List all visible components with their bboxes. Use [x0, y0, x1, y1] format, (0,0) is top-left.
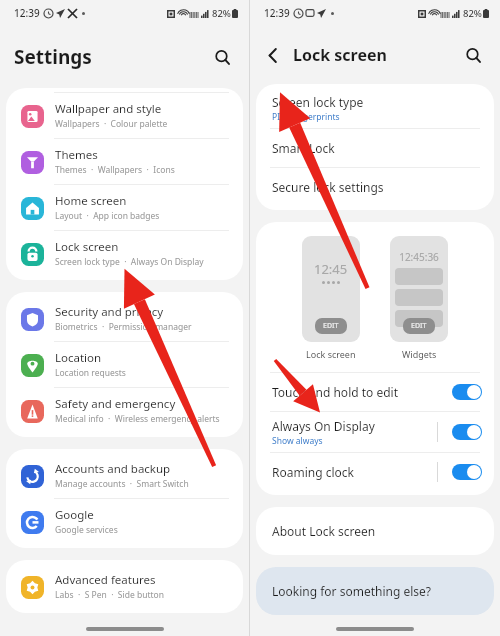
button[interactable]: Themes — [6, 138, 243, 184]
staticText: 82% — [463, 7, 482, 20]
button[interactable]: Security and privacy — [6, 296, 243, 341]
staticText: Advanced features — [55, 572, 156, 588]
staticText: 12:45:36 — [395, 250, 443, 264]
button[interactable]: EDIT — [323, 321, 339, 331]
staticText: Manage accounts · Smart Switch — [55, 478, 189, 490]
button[interactable]: Always On Display — [256, 411, 494, 452]
button[interactable]: Accounts and backup — [6, 453, 243, 498]
staticText: Biometrics · Permission manager — [55, 321, 192, 333]
staticText: Google services — [55, 524, 118, 536]
staticText: Safety and emergency — [55, 396, 176, 412]
staticText: Themes · Wallpapers · Icons — [55, 164, 175, 176]
staticText: Lock screen — [306, 348, 356, 360]
staticText: Security and privacy — [55, 304, 164, 320]
staticText: 82% — [212, 7, 231, 20]
staticText: Looking for something else? — [272, 583, 432, 599]
button[interactable]: 12:45:36 — [390, 236, 448, 342]
button[interactable]: Home screen — [6, 184, 243, 230]
staticText: Screen lock type — [272, 94, 364, 110]
staticText: Touch and hold to edit — [272, 384, 399, 400]
button[interactable]: 12:45 — [302, 236, 360, 342]
button[interactable]: Screen lock type — [256, 88, 494, 128]
staticText: Smart Lock — [272, 140, 335, 156]
staticText: 12:39 — [14, 6, 40, 20]
staticText: About Lock screen — [272, 523, 376, 539]
staticText: Show always — [272, 435, 323, 447]
button[interactable]: Roaming clock toggle — [452, 464, 482, 480]
staticText: Location requests — [55, 367, 126, 379]
staticText: Always On Display — [272, 418, 375, 434]
button[interactable]: EDIT — [411, 321, 427, 331]
staticText: Accounts and backup — [55, 461, 171, 477]
button[interactable]: Search — [209, 44, 235, 70]
button[interactable]: Advanced features — [6, 564, 243, 609]
staticText: Roaming clock — [272, 464, 354, 480]
button[interactable]: Back — [260, 42, 286, 68]
button[interactable]: Google — [6, 498, 243, 544]
staticText: Labs · S Pen · Side button — [55, 589, 164, 601]
staticText: EDIT — [411, 321, 427, 331]
button[interactable]: Lock screen — [6, 230, 243, 276]
button[interactable]: Secure lock settings — [256, 167, 494, 206]
button[interactable]: About Lock screen — [256, 511, 494, 551]
staticText: 12:39 — [264, 6, 290, 20]
staticText: Lock screen — [55, 239, 119, 255]
button[interactable]: Roaming clock — [256, 452, 494, 491]
button[interactable]: Smart Lock — [256, 128, 494, 167]
staticText: Layout · App icon badges — [55, 210, 160, 222]
staticText: Wallpapers · Colour palette — [55, 118, 168, 130]
button[interactable]: Location — [6, 341, 243, 387]
staticText: Home screen — [55, 193, 127, 209]
staticText: Wallpaper and style — [55, 101, 162, 117]
button[interactable]: Touch and hold to edit toggle — [452, 384, 482, 400]
staticText: Secure lock settings — [272, 179, 384, 195]
staticText: Screen lock type · Always On Display — [55, 256, 204, 268]
staticText: Google — [55, 507, 94, 523]
button[interactable]: Search — [460, 42, 486, 68]
button[interactable]: Touch and hold to edit — [256, 372, 494, 411]
staticText: 12:45 — [314, 260, 348, 278]
button[interactable]: Looking for something else? — [256, 571, 494, 611]
staticText: PIN, Fingerprints — [272, 111, 340, 123]
staticText: Themes — [55, 147, 98, 163]
button[interactable]: Wallpaper and style — [6, 92, 243, 138]
staticText: Medical info · Wireless emergency alerts — [55, 413, 220, 425]
button[interactable]: Safety and emergency — [6, 387, 243, 433]
staticText: Location — [55, 350, 102, 366]
staticText: Lock screen — [293, 44, 387, 66]
button[interactable]: Always On Display toggle — [452, 424, 482, 440]
staticText: EDIT — [323, 321, 339, 331]
staticText: Settings — [14, 44, 92, 70]
staticText: Widgets — [402, 348, 437, 360]
